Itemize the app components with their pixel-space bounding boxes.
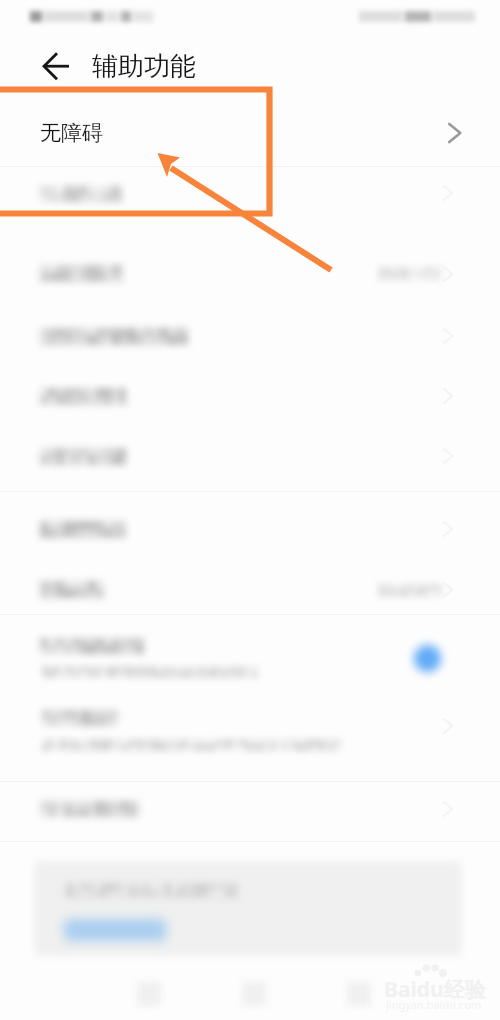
button[interactable]: Back xyxy=(343,978,375,1010)
staticText: Baidu经验 xyxy=(384,975,486,1004)
button[interactable]: Home xyxy=(238,978,270,1010)
staticText: 无障碍 xyxy=(40,120,103,146)
button[interactable]: Toggle xyxy=(414,645,441,672)
button[interactable]: Open xyxy=(64,919,166,941)
button[interactable]: Recents xyxy=(133,978,165,1010)
button[interactable]: 无障碍 xyxy=(0,100,500,166)
staticText: 辅助功能 xyxy=(92,50,196,83)
staticText: jingyan.baidu.com xyxy=(386,997,482,1012)
button[interactable]: Back xyxy=(30,44,80,88)
